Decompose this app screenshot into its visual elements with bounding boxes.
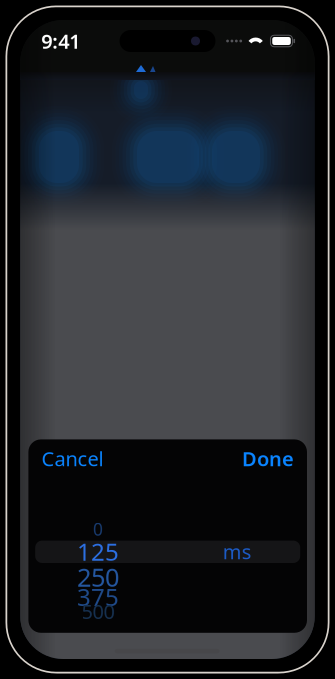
staticText: 0	[93, 517, 103, 540]
staticText: 500	[82, 598, 115, 625]
staticText: Done	[242, 445, 294, 472]
staticText: 375	[77, 581, 119, 613]
staticText: Cancel	[41, 445, 103, 472]
staticText: 125	[77, 536, 119, 567]
staticText: 250	[77, 560, 119, 594]
button[interactable]: Done	[238, 439, 298, 478]
staticText: ms	[223, 538, 252, 565]
staticText: 9:41	[41, 28, 80, 54]
button[interactable]: Cancel	[37, 439, 107, 478]
